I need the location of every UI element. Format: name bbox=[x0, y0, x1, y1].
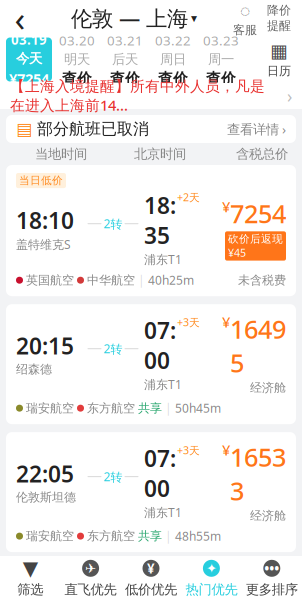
staticText: 后天 bbox=[112, 51, 138, 68]
staticText: 提醒 bbox=[267, 18, 291, 33]
button[interactable]: 03.22 bbox=[150, 37, 196, 81]
staticText: 低价优先 bbox=[125, 581, 177, 598]
staticText: 07:00 bbox=[144, 315, 176, 375]
staticText: ¥ bbox=[222, 312, 230, 332]
button[interactable]: 降价 bbox=[262, 3, 296, 33]
staticText: ¥ bbox=[222, 568, 230, 588]
staticText: 03.22 bbox=[155, 31, 191, 49]
staticText: 降价 bbox=[267, 3, 291, 17]
button[interactable]: 【上海入境提醒】所有中外人员，凡是在进入上海前14... bbox=[0, 83, 302, 109]
button[interactable]: 当日低价 bbox=[6, 165, 296, 296]
staticText: 2转 bbox=[103, 469, 122, 485]
staticText: ••• bbox=[264, 559, 279, 577]
staticText: 经济舱 bbox=[250, 508, 286, 523]
staticText: 共享 bbox=[138, 529, 162, 543]
staticText: 7254 bbox=[230, 197, 286, 230]
staticText: 16533 bbox=[230, 440, 286, 507]
staticText: 20:15 bbox=[16, 331, 74, 361]
staticText: 伦敦斯坦德 bbox=[16, 490, 76, 504]
staticText: +3天 bbox=[177, 315, 200, 329]
staticText: 03.21 bbox=[107, 31, 143, 49]
staticText: 明天 bbox=[64, 51, 90, 68]
button[interactable]: ••• bbox=[242, 559, 302, 598]
staticText: 英国航空 bbox=[26, 273, 74, 287]
staticText: 浦东T1 bbox=[144, 504, 182, 520]
staticText: | bbox=[165, 528, 172, 544]
staticText: 查价 bbox=[62, 69, 92, 87]
staticText: 共享 bbox=[138, 401, 162, 415]
staticText: 18:10 bbox=[16, 205, 74, 235]
button[interactable]: 22:05 bbox=[6, 432, 296, 552]
button[interactable]: 返回 bbox=[0, 0, 40, 36]
staticText: 查价 bbox=[206, 69, 236, 87]
button[interactable]: ▼ bbox=[0, 559, 60, 598]
staticText: ✈ bbox=[85, 561, 96, 576]
staticText: 03.20 bbox=[59, 31, 95, 49]
staticText: ▾ bbox=[191, 11, 197, 25]
staticText: ▦ bbox=[270, 40, 288, 62]
staticText: 21:25 bbox=[16, 586, 74, 601]
staticText: 查价 bbox=[110, 69, 140, 87]
staticText: ◌ bbox=[240, 0, 250, 22]
staticText: 盖特维克S bbox=[16, 236, 71, 252]
staticText: 客服 bbox=[233, 23, 257, 37]
staticText: 含税总价 bbox=[236, 146, 288, 162]
button[interactable]: ▤ bbox=[0, 115, 302, 143]
staticText: 16561 bbox=[230, 568, 286, 601]
staticText: 瑞安航空 bbox=[26, 401, 74, 415]
staticText: 经济舱 bbox=[250, 380, 286, 395]
staticText: ▼ bbox=[23, 557, 38, 580]
staticText: 周一 bbox=[208, 51, 234, 68]
staticText: 东方航空 bbox=[87, 529, 135, 543]
staticText: 筛选 bbox=[17, 581, 43, 598]
button[interactable]: 20:15 bbox=[6, 304, 296, 424]
staticText: 浦东T1 bbox=[144, 376, 182, 392]
staticText: 未含税费 bbox=[238, 273, 286, 287]
button[interactable]: ◌ bbox=[228, 0, 262, 37]
button[interactable]: 03.19 bbox=[6, 37, 52, 81]
staticText: 今天 bbox=[16, 50, 42, 67]
staticText: 03.19 bbox=[11, 31, 47, 48]
staticText: +3天 bbox=[177, 443, 200, 457]
staticText: 16495 bbox=[230, 312, 286, 379]
staticText: 48h55m bbox=[175, 528, 221, 544]
button[interactable]: ✦ bbox=[181, 559, 242, 598]
staticText: 日历 bbox=[267, 64, 291, 78]
staticText: 中华航空 bbox=[87, 273, 135, 287]
button[interactable]: 日历 bbox=[256, 36, 302, 82]
staticText: 【上海入境提醒】所有中外人员，凡是在进入上海前14... bbox=[10, 77, 265, 115]
staticText: 40h25m bbox=[148, 272, 194, 288]
button[interactable]: 03.20 bbox=[54, 37, 100, 81]
staticText: 03.23 bbox=[203, 31, 239, 49]
staticText: ✦ bbox=[206, 561, 217, 576]
staticText: 伦敦 — 上海 bbox=[71, 4, 188, 32]
staticText: ▤ bbox=[16, 119, 32, 139]
staticText: ¥ bbox=[147, 559, 155, 577]
staticText: 当日低价 bbox=[19, 174, 63, 187]
staticText: › bbox=[287, 84, 292, 107]
staticText: ‹ bbox=[14, 0, 25, 41]
staticText: 18:35 bbox=[144, 190, 176, 250]
staticText: 2转 bbox=[103, 341, 122, 357]
button[interactable]: 21:25 bbox=[6, 560, 296, 601]
staticText: +3天 bbox=[177, 571, 200, 585]
staticText: 当地时间 bbox=[35, 146, 87, 162]
staticText: 北京时间 bbox=[134, 146, 186, 162]
staticText: 绍森德 bbox=[16, 362, 52, 377]
staticText: ¥ bbox=[222, 440, 230, 460]
button[interactable]: ✈ bbox=[60, 559, 121, 598]
staticText: 07:00 bbox=[144, 571, 176, 601]
staticText: 浦东T1 bbox=[144, 251, 182, 267]
staticText: 部分航班已取消 bbox=[37, 119, 149, 139]
staticText: 更多排序 bbox=[246, 581, 298, 598]
button[interactable]: 03.21 bbox=[102, 37, 148, 81]
staticText: ¥ bbox=[222, 197, 230, 216]
staticText: 直飞优先 bbox=[65, 581, 117, 598]
staticText: 07:00 bbox=[144, 443, 176, 503]
button[interactable]: 伦敦 — 上海 bbox=[71, 4, 197, 32]
button[interactable]: 03.23 bbox=[198, 37, 244, 81]
staticText: 砍价后返现¥45 bbox=[228, 232, 283, 260]
staticText: 50h45m bbox=[175, 400, 221, 416]
button[interactable]: ¥ bbox=[121, 559, 181, 598]
